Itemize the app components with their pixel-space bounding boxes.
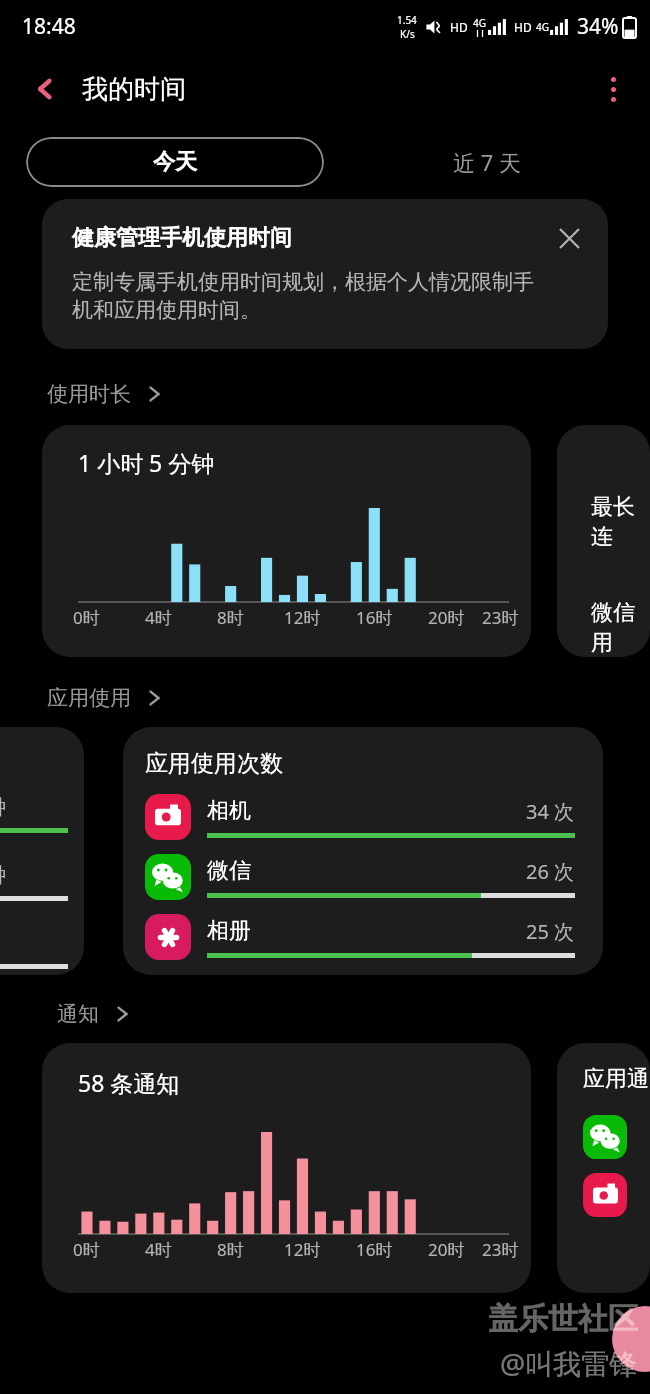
- staticText: 1.54: [397, 13, 417, 27]
- staticText: 12时: [284, 606, 321, 629]
- staticText: 17 分钟: [0, 793, 7, 820]
- button[interactable]: 相机: [145, 794, 575, 840]
- staticText: 8时: [217, 1238, 244, 1261]
- staticText: 34%: [577, 12, 619, 41]
- staticText: 23时: [482, 606, 519, 629]
- staticText: 4时: [145, 1238, 172, 1261]
- staticText: 1 小时 5 分钟: [78, 447, 215, 478]
- staticText: 相机: [207, 797, 526, 825]
- staticText: 0时: [73, 606, 100, 629]
- staticText: 34 次: [526, 798, 575, 825]
- staticText: 今天: [153, 148, 197, 176]
- button[interactable]: 应用使用次数: [123, 727, 603, 975]
- staticText: 18:48: [22, 12, 76, 41]
- button[interactable]: 17 分钟: [0, 727, 84, 975]
- staticText: 58 条通知: [78, 1067, 180, 1098]
- button[interactable]: 健康管理手机使用时间: [42, 199, 608, 349]
- staticText: 4G: [536, 20, 549, 34]
- button[interactable]: 使用时长: [47, 377, 163, 411]
- button[interactable]: 58 条通知: [42, 1043, 531, 1293]
- button[interactable]: 应用使用: [47, 681, 163, 715]
- button[interactable]: 相册: [145, 914, 575, 960]
- staticText: 0时: [73, 1238, 100, 1261]
- staticText: 4时: [145, 606, 172, 629]
- staticText: HD: [514, 19, 532, 35]
- staticText: 应用通: [583, 1065, 649, 1093]
- staticText: 26 次: [526, 858, 575, 885]
- staticText: 微信用: [591, 599, 650, 657]
- button[interactable]: 今天: [26, 137, 324, 187]
- staticText: 12时: [284, 1238, 321, 1261]
- staticText: 16时: [356, 1238, 393, 1261]
- button[interactable]: Back: [22, 66, 68, 112]
- staticText: 20时: [428, 1238, 465, 1261]
- staticText: 近 7 天: [453, 147, 522, 177]
- staticText: 最长连: [591, 493, 650, 551]
- button[interactable]: 最长连: [557, 425, 650, 657]
- staticText: K/s: [400, 27, 415, 41]
- button[interactable]: 近 7 天: [324, 137, 650, 187]
- staticText: 20时: [428, 606, 465, 629]
- button[interactable]: More options: [590, 66, 636, 112]
- staticText: 盖乐世社区: [488, 1300, 638, 1338]
- staticText: 25 次: [526, 918, 575, 945]
- staticText: 16时: [356, 606, 393, 629]
- staticText: 通知: [57, 1001, 99, 1027]
- button[interactable]: 应用通: [557, 1043, 650, 1293]
- staticText: 应用使用: [47, 685, 131, 711]
- button[interactable]: 通知: [57, 997, 131, 1031]
- staticText: 相册: [207, 917, 526, 945]
- staticText: 我的时间: [82, 73, 186, 106]
- staticText: 4G: [473, 16, 486, 30]
- staticText: 应用使用次数: [145, 749, 283, 778]
- button[interactable]: 微信: [145, 854, 575, 900]
- button[interactable]: Add: [612, 1306, 650, 1372]
- button[interactable]: 1 小时 5 分钟: [42, 425, 531, 657]
- staticText: 使用时长: [47, 381, 131, 407]
- staticText: 微信: [207, 857, 526, 885]
- staticText: 11 分钟: [0, 861, 7, 888]
- staticText: 23时: [482, 1238, 519, 1261]
- staticText: 定制专属手机使用时间规划，根据个人情况限制手 机和应用使用时间。: [72, 269, 534, 323]
- button[interactable]: Close: [552, 221, 586, 255]
- staticText: @叫我雷锋: [500, 1344, 638, 1382]
- staticText: 8时: [217, 606, 244, 629]
- staticText: HD: [450, 19, 468, 35]
- staticText: 健康管理手机使用时间: [72, 224, 552, 252]
